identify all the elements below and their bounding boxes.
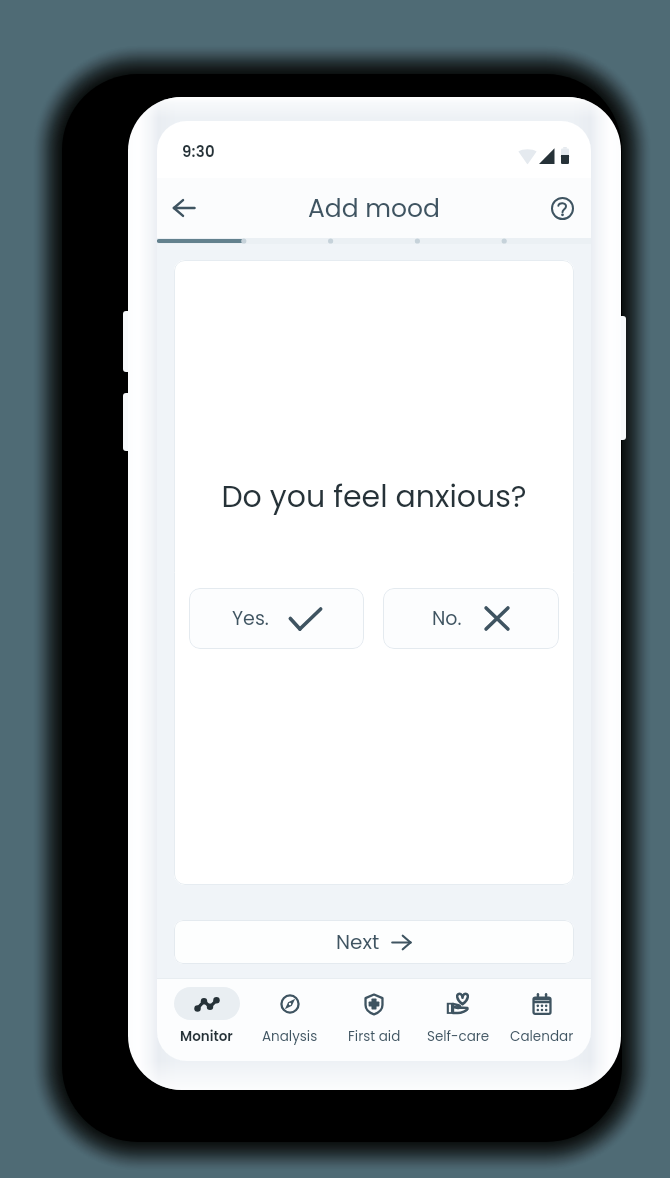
- button[interactable]: Analysis: [248, 979, 332, 1061]
- staticText: Self-care: [427, 1027, 490, 1046]
- staticText: Analysis: [262, 1027, 318, 1046]
- button[interactable]: No.: [383, 588, 559, 649]
- staticText: Monitor: [180, 1027, 233, 1046]
- staticText: Next: [336, 928, 380, 956]
- button[interactable]: Yes.: [189, 588, 364, 649]
- staticText: Add mood: [308, 191, 440, 226]
- staticText: Do you feel anxious?: [221, 476, 527, 518]
- button[interactable]: First aid: [332, 979, 416, 1061]
- button[interactable]: Monitor: [165, 979, 248, 1061]
- staticText: No.: [432, 605, 462, 632]
- button[interactable]: Calendar: [500, 979, 584, 1061]
- staticText: Yes.: [232, 605, 269, 632]
- staticText: First aid: [348, 1027, 401, 1046]
- staticText: 9:30: [182, 141, 215, 162]
- button[interactable]: Help: [541, 187, 583, 229]
- button[interactable]: Back: [163, 187, 205, 229]
- button[interactable]: Next: [174, 920, 574, 964]
- staticText: Calendar: [510, 1027, 574, 1046]
- button[interactable]: Self-care: [416, 979, 500, 1061]
